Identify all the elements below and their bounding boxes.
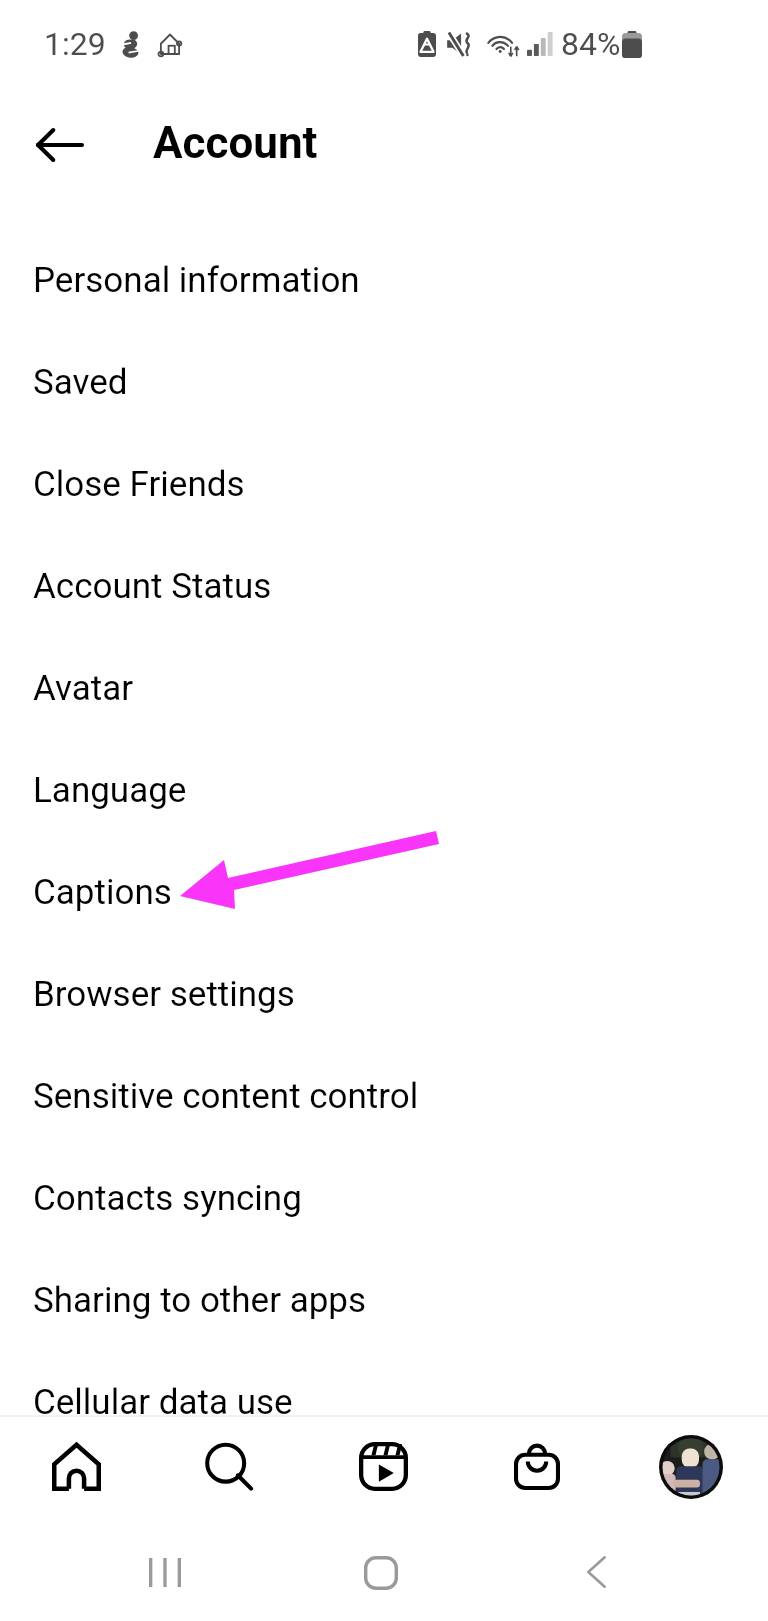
staticText: Close Friends (33, 464, 245, 505)
staticText: Sensitive content control (33, 1076, 419, 1117)
button[interactable]: Reels (306, 1417, 460, 1520)
staticText: Saved (33, 362, 128, 403)
staticText: Cellular data use (33, 1382, 293, 1423)
staticText: Avatar (33, 668, 134, 709)
staticText: Language (33, 770, 187, 811)
staticText: Captions (33, 872, 172, 913)
staticText: Browser settings (33, 974, 295, 1015)
button[interactable]: Shop (460, 1417, 614, 1520)
staticText: Account (153, 117, 318, 169)
button[interactable]: Personal information (0, 229, 768, 331)
button[interactable]: Avatar (0, 637, 768, 739)
staticText: Contacts syncing (33, 1178, 302, 1219)
button[interactable]: Sharing to other apps (0, 1249, 768, 1351)
button[interactable]: Close Friends (0, 433, 768, 535)
staticText: 1:29 (44, 25, 106, 63)
button[interactable]: Account Status (0, 535, 768, 637)
button[interactable]: Language (0, 739, 768, 841)
button[interactable]: Search (153, 1417, 306, 1520)
button[interactable]: Back (18, 103, 102, 187)
button[interactable]: Browser settings (0, 943, 768, 1045)
button[interactable]: Cellular data use (0, 1351, 768, 1453)
button[interactable]: Recent apps (131, 1538, 199, 1606)
button[interactable]: Saved (0, 331, 768, 433)
button[interactable]: Captions (0, 841, 768, 943)
staticText: 84% (561, 25, 621, 63)
staticText: Account Status (33, 566, 272, 607)
staticText: Sharing to other apps (33, 1280, 367, 1321)
button[interactable]: Profile (614, 1417, 768, 1520)
button[interactable]: Home (0, 1417, 153, 1520)
button[interactable]: Sensitive content control (0, 1045, 768, 1147)
staticText: Personal information (33, 260, 360, 301)
button[interactable]: Back (562, 1538, 630, 1606)
button[interactable]: Home (347, 1539, 415, 1607)
button[interactable]: Contacts syncing (0, 1147, 768, 1249)
